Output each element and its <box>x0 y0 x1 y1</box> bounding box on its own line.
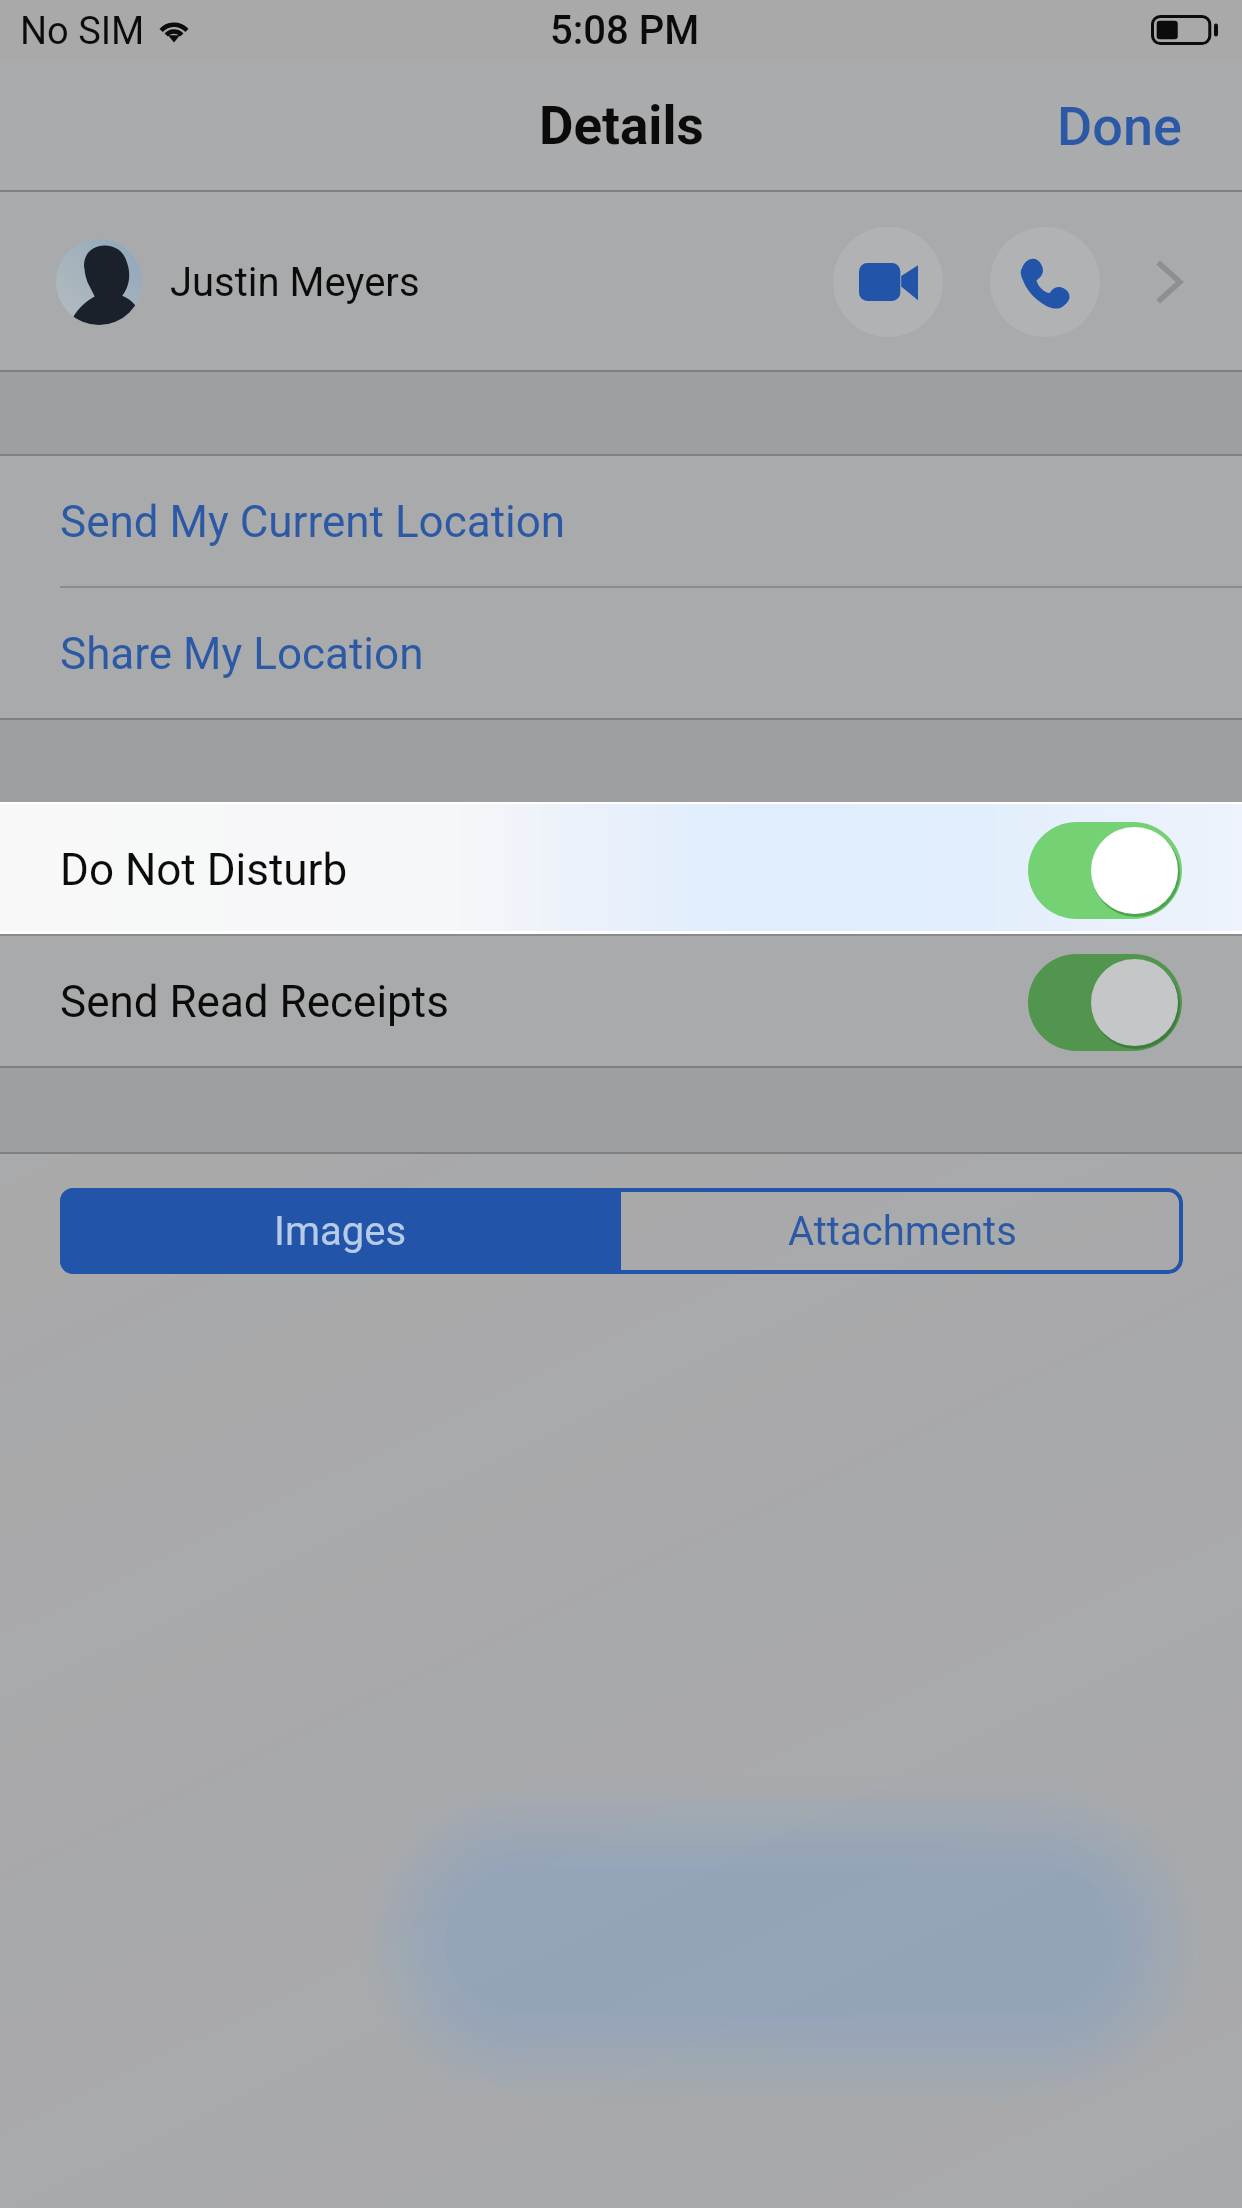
button[interactable]: Send Read Receipts <box>0 936 1242 1068</box>
button[interactable]: Do Not Disturb <box>0 804 1242 936</box>
button[interactable]: Justin Meyers <box>0 192 1242 372</box>
staticText: Done <box>1057 95 1182 158</box>
staticText: Share My Location <box>60 628 424 680</box>
button[interactable]: Share My Location <box>0 588 1242 720</box>
staticText: Justin Meyers <box>170 259 420 306</box>
button[interactable]: Video call <box>833 227 943 337</box>
button[interactable]: Call <box>990 227 1100 337</box>
staticText: No SIM <box>20 9 145 54</box>
staticText: Attachments <box>788 1208 1017 1255</box>
button[interactable]: Contact info <box>1157 262 1183 302</box>
staticText: Images <box>274 1208 407 1255</box>
staticText: Send Read Receipts <box>60 976 449 1028</box>
button[interactable]: Images <box>60 1188 621 1274</box>
staticText: Do Not Disturb <box>60 844 348 896</box>
staticText: Details <box>539 95 704 157</box>
button[interactable]: Attachments <box>621 1188 1183 1274</box>
button[interactable]: Done <box>1017 71 1242 182</box>
staticText: Send My Current Location <box>60 496 566 548</box>
staticText: 5:08 PM <box>550 7 700 54</box>
button[interactable]: Send My Current Location <box>0 456 1242 588</box>
